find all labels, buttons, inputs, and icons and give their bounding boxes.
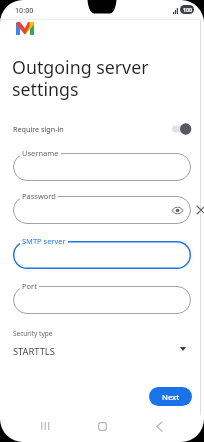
button[interactable]: Clear password (191, 200, 204, 220)
staticText: Password (22, 191, 56, 201)
staticText: Require sign-in (13, 124, 64, 134)
staticText: 100 (183, 6, 192, 13)
button[interactable]: Username (13, 153, 191, 181)
staticText: Outgoing server settings (12, 55, 149, 101)
button[interactable]: Security type (0, 325, 204, 361)
staticText: Next (162, 392, 180, 402)
button[interactable]: Recent apps (31, 412, 59, 440)
staticText: 10:00 (15, 5, 34, 15)
button[interactable]: Back (145, 412, 173, 440)
button[interactable]: Next (149, 387, 192, 406)
staticText: Security type (13, 329, 53, 338)
button[interactable]: Require sign-in (172, 121, 191, 137)
button[interactable]: Password (13, 196, 191, 224)
staticText: Username (22, 148, 59, 158)
button[interactable]: Home (88, 412, 116, 440)
staticText: Port (22, 281, 37, 291)
button[interactable]: Port (13, 286, 191, 314)
staticText: STARTTLS (13, 345, 55, 358)
button[interactable]: SMTP server (13, 241, 191, 269)
button[interactable]: Show password (169, 202, 185, 218)
staticText: SMTP server (22, 236, 66, 246)
button[interactable]: Require sign-in (0, 117, 204, 141)
